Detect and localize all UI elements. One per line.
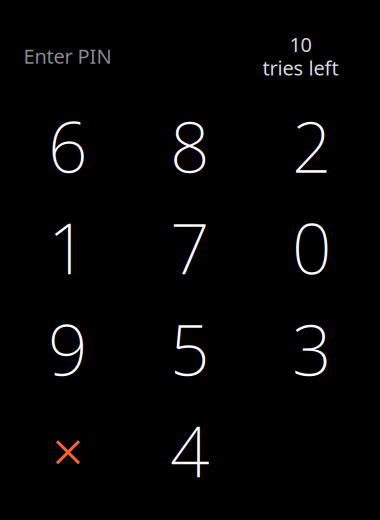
staticText: 10 bbox=[289, 31, 311, 58]
button[interactable]: 0 bbox=[251, 196, 373, 298]
staticText: 5 bbox=[170, 303, 210, 395]
button[interactable]: 3 bbox=[251, 298, 373, 399]
button[interactable]: 2 bbox=[251, 95, 373, 196]
staticText: 3 bbox=[292, 303, 332, 395]
button[interactable]: 7 bbox=[129, 196, 251, 298]
staticText: 9 bbox=[48, 303, 88, 395]
staticText: tries left bbox=[262, 55, 338, 81]
staticText: 0 bbox=[292, 201, 332, 293]
staticText: 8 bbox=[170, 100, 210, 192]
button[interactable]: 1 bbox=[7, 196, 129, 298]
button[interactable]: 9 bbox=[7, 298, 129, 399]
button[interactable]: 4 bbox=[129, 399, 251, 501]
staticText: 6 bbox=[48, 100, 88, 192]
button[interactable]: Delete bbox=[7, 399, 129, 501]
button[interactable]: 5 bbox=[129, 298, 251, 399]
staticText: 7 bbox=[170, 201, 210, 293]
staticText: Enter PIN bbox=[23, 43, 111, 69]
staticText: 1 bbox=[48, 201, 88, 293]
staticText: 2 bbox=[292, 100, 332, 192]
staticText: 4 bbox=[170, 404, 210, 496]
button[interactable]: 8 bbox=[129, 95, 251, 196]
button[interactable]: 6 bbox=[7, 95, 129, 196]
